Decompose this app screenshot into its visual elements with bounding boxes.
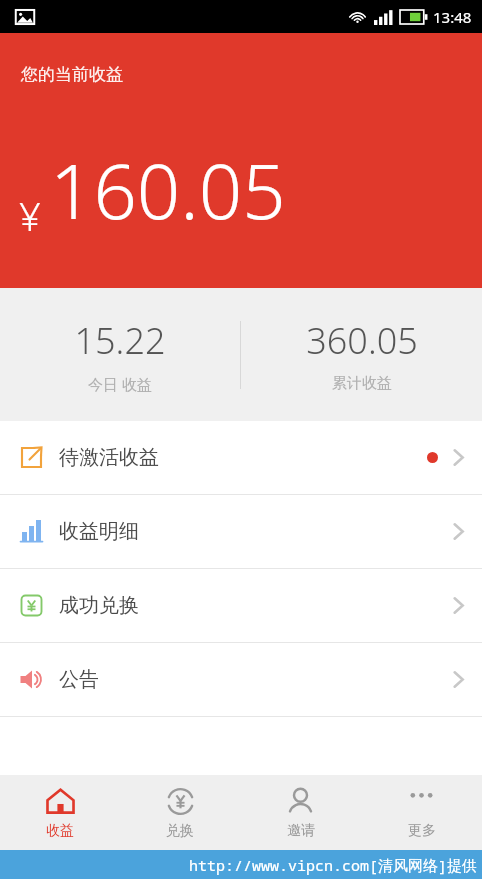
staticText: 今日 收益 xyxy=(88,374,152,394)
button[interactable]: 邀请 xyxy=(240,775,361,850)
staticText: 160.05 xyxy=(50,138,286,242)
staticText: 收益 xyxy=(46,822,74,840)
staticText: 收益明细 xyxy=(59,519,139,544)
staticText: http://www.vipcn.com[清风网络]提供 xyxy=(189,855,478,875)
button[interactable]: 兑换 xyxy=(120,775,240,850)
button[interactable]: 成功兑换 xyxy=(0,569,482,642)
staticText: 待激活收益 xyxy=(59,445,159,470)
button[interactable]: 公告 xyxy=(0,643,482,716)
staticText: ¥ xyxy=(19,190,41,242)
staticText: 15.22 xyxy=(74,316,166,365)
staticText: 累计收益 xyxy=(332,374,392,393)
button[interactable]: 收益 xyxy=(0,775,120,850)
button[interactable]: 待激活收益 xyxy=(0,421,482,494)
staticText: 更多 xyxy=(408,822,436,840)
staticText: 兑换 xyxy=(166,822,194,840)
staticText: 成功兑换 xyxy=(59,593,139,618)
button[interactable]: 更多 xyxy=(361,775,482,850)
staticText: 您的当前收益 xyxy=(21,64,123,85)
button[interactable]: 收益明细 xyxy=(0,495,482,568)
staticText: 公告 xyxy=(59,667,99,692)
staticText: 13:48 xyxy=(433,7,472,27)
staticText: 360.05 xyxy=(306,316,418,365)
staticText: 邀请 xyxy=(287,822,315,840)
